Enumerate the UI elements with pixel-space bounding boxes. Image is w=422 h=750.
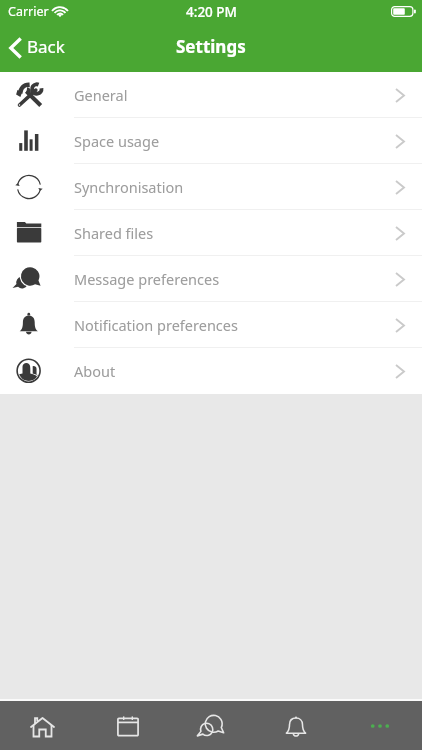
staticText: General <box>74 85 128 105</box>
button[interactable]: Shared files <box>0 210 422 256</box>
staticText: Notification preferences <box>74 315 238 335</box>
staticText: About <box>74 361 116 381</box>
staticText: 4:20 PM <box>186 3 237 21</box>
staticText: Back <box>27 35 65 58</box>
button[interactable]: Space usage <box>0 118 422 164</box>
staticText: Shared files <box>74 223 154 243</box>
button[interactable]: Calendar <box>85 701 170 750</box>
button[interactable]: Message preferences <box>0 256 422 302</box>
button[interactable]: Home <box>0 701 85 750</box>
button[interactable]: Synchronisation <box>0 164 422 210</box>
button[interactable]: More <box>338 701 422 750</box>
staticText: Space usage <box>74 131 160 151</box>
staticText: Settings <box>176 35 246 58</box>
button[interactable]: Notifications <box>254 701 338 750</box>
button[interactable]: Notification preferences <box>0 302 422 348</box>
staticText: Message preferences <box>74 269 220 289</box>
staticText: Synchronisation <box>74 177 184 197</box>
staticText: Carrier <box>8 3 49 20</box>
button[interactable]: About <box>0 348 422 394</box>
button[interactable]: Messages <box>170 701 254 750</box>
button[interactable]: Back <box>0 28 77 67</box>
button[interactable]: General <box>0 72 422 118</box>
